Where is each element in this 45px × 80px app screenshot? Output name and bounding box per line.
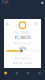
staticText: 9:41 (2, 1, 9, 4)
staticText: ▮▮ (41, 1, 43, 4)
staticText: 68% (19, 45, 26, 51)
staticText: Next payment (14, 57, 31, 60)
staticText: Monthly goal (13, 42, 31, 45)
staticText: Sep 28, 2025 (12, 61, 32, 65)
staticText: Your balance (14, 31, 31, 34)
staticText: $1,284.50 (14, 34, 30, 40)
